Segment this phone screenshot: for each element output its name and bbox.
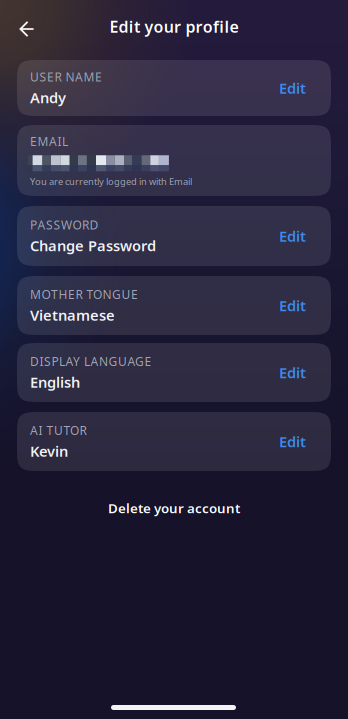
staticText: PASSWORD (30, 217, 98, 233)
staticText: English (30, 372, 80, 392)
button[interactable]: AI TUTOR (17, 412, 331, 471)
button[interactable]: Back (9, 11, 45, 47)
staticText: You are currently logged in with Email (30, 175, 192, 188)
staticText: Edit (279, 226, 306, 246)
staticText: Delete your account (108, 499, 240, 517)
staticText: Kevin (30, 441, 68, 461)
staticText: AI TUTOR (30, 422, 86, 438)
button[interactable]: Delete your account (0, 491, 348, 525)
staticText: Edit (279, 78, 306, 98)
staticText: Andy (30, 88, 66, 107)
staticText: Edit (279, 363, 306, 382)
staticText: DISPLAY LANGUAGE (30, 353, 151, 369)
staticText: Vietnamese (30, 305, 115, 325)
staticText: USER NAME (30, 69, 102, 85)
staticText: Change Password (30, 236, 156, 255)
button[interactable]: DISPLAY LANGUAGE (17, 343, 331, 402)
staticText: EMAIL (30, 133, 68, 149)
button[interactable]: USER NAME (17, 60, 331, 116)
staticText: Edit (279, 296, 306, 315)
staticText: Edit (279, 432, 306, 451)
button[interactable]: PASSWORD (17, 206, 331, 266)
button[interactable]: MOTHER TONGUE (17, 276, 331, 335)
staticText: MOTHER TONGUE (30, 286, 138, 302)
staticText: Edit your profile (109, 16, 239, 37)
button[interactable]: EMAIL (17, 125, 331, 196)
